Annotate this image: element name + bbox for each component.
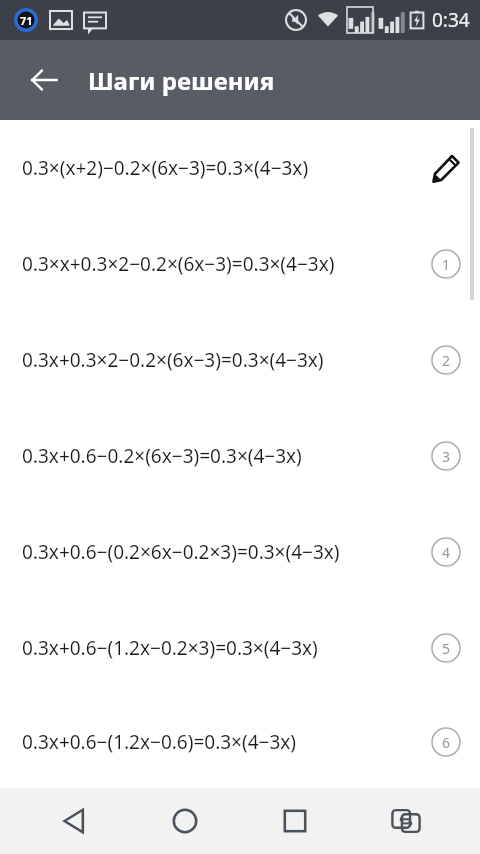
staticText: Шаги решения bbox=[88, 64, 275, 97]
button[interactable]: Back bbox=[38, 793, 110, 849]
staticText: 6 bbox=[442, 733, 451, 752]
button[interactable]: Recents bbox=[259, 793, 331, 849]
staticText: 0.3x+0.6−(1.2x−0.2×3)=0.3×(4−3x) bbox=[22, 635, 318, 661]
staticText: 1 bbox=[442, 255, 451, 274]
staticText: 3 bbox=[442, 447, 451, 466]
staticText: 0.3x+0.3×2−0.2×(6x−3)=0.3×(4−3x) bbox=[22, 347, 324, 373]
button[interactable]: 0.3x+0.6−0.2×(6x−3)=0.3×(4−3x) bbox=[0, 408, 480, 504]
staticText: 0:34 bbox=[432, 7, 470, 33]
staticText: 0.3x+0.6−(0.2×6x−0.2×3)=0.3×(4−3x) bbox=[22, 539, 340, 565]
staticText: 2 bbox=[442, 351, 451, 370]
staticText: 0.3×x+0.3×2−0.2×(6x−3)=0.3×(4−3x) bbox=[22, 251, 335, 277]
staticText: 4 bbox=[442, 543, 451, 562]
staticText: 5 bbox=[442, 639, 451, 658]
button[interactable]: 0.3x+0.6−(1.2x−0.6)=0.3×(4−3x) bbox=[0, 696, 480, 788]
staticText: 71 bbox=[20, 13, 33, 28]
button[interactable]: 0.3×x+0.3×2−0.2×(6x−3)=0.3×(4−3x) bbox=[0, 216, 480, 312]
button[interactable]: Home bbox=[149, 793, 221, 849]
button[interactable]: 0.3×(x+2)−0.2×(6x−3)=0.3×(4−3x) bbox=[0, 120, 480, 216]
staticText: 0.3×(x+2)−0.2×(6x−3)=0.3×(4−3x) bbox=[22, 155, 309, 181]
button[interactable]: 0.3x+0.3×2−0.2×(6x−3)=0.3×(4−3x) bbox=[0, 312, 480, 408]
button[interactable]: Switch app bbox=[370, 793, 442, 849]
button[interactable]: 0.3x+0.6−(1.2x−0.2×3)=0.3×(4−3x) bbox=[0, 600, 480, 696]
button[interactable]: Back bbox=[20, 56, 68, 104]
button[interactable]: 0.3x+0.6−(0.2×6x−0.2×3)=0.3×(4−3x) bbox=[0, 504, 480, 600]
staticText: 0.3x+0.6−(1.2x−0.6)=0.3×(4−3x) bbox=[22, 729, 297, 755]
staticText: 0.3x+0.6−0.2×(6x−3)=0.3×(4−3x) bbox=[22, 443, 302, 469]
